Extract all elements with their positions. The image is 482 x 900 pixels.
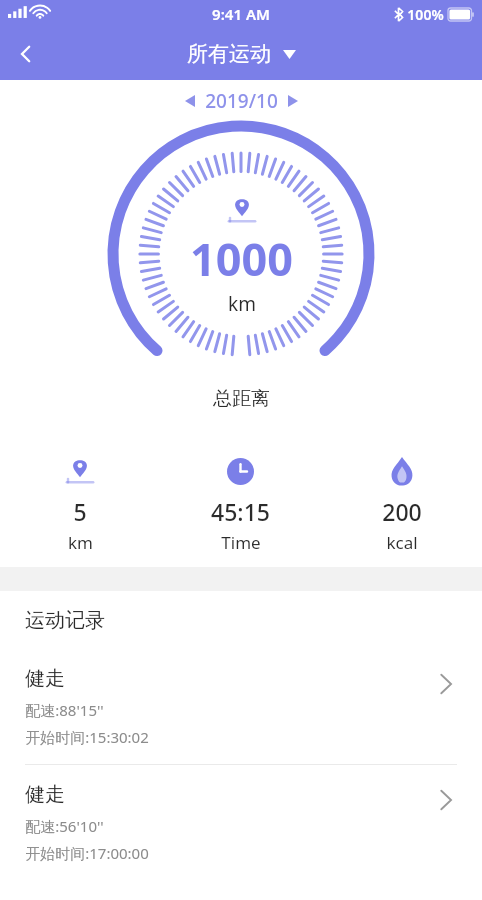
staticText: 200 [382,496,422,527]
button[interactable]: Calories [321,448,482,560]
staticText: 运动记录 [25,608,105,633]
staticText: 开始时间:17:00:00 [25,843,149,863]
staticText: 100% [407,5,444,24]
staticText: 45:15 [211,496,270,527]
button[interactable]: Back [0,28,52,80]
staticText: km [228,291,256,317]
staticText: Time [221,531,261,554]
button[interactable]: Time [160,448,321,560]
staticText: km [68,531,93,554]
staticText: 健走 [25,666,65,691]
button[interactable]: 所有运动 [181,37,302,71]
staticText: 总距离 [213,387,270,411]
staticText: 5 [73,496,87,527]
staticText: 9:41 AM [212,4,270,24]
staticText: 配速:56'10'' [25,816,104,836]
staticText: 开始时间:15:30:02 [25,727,149,747]
staticText: 1000 [190,228,293,289]
staticText: 2019/10 [205,88,278,114]
button[interactable]: Next month [278,86,308,116]
button[interactable]: Distance [0,448,160,560]
button[interactable]: Previous month [175,86,205,116]
staticText: 配速:88'15'' [25,700,104,720]
button[interactable]: 健走 [0,765,482,880]
staticText: 健走 [25,782,65,807]
button[interactable]: 健走 [0,649,482,764]
staticText: kcal [386,531,418,554]
staticText: 所有运动 [187,41,271,67]
